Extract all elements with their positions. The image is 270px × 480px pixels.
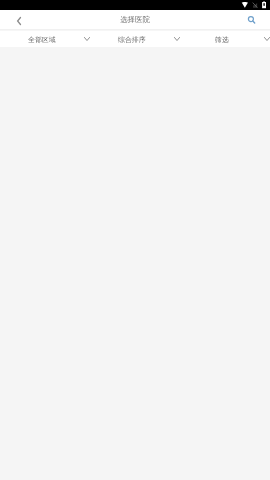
button[interactable]: 综合排序 (90, 31, 180, 47)
button[interactable]: 筛选 (180, 31, 270, 47)
staticText: 综合排序 (118, 35, 146, 44)
staticText: 选择医院 (120, 15, 150, 24)
staticText: 筛选 (215, 35, 229, 44)
button[interactable]: Search (244, 10, 258, 29)
button[interactable]: Back (17, 10, 29, 29)
staticText: 全部区域 (28, 35, 56, 44)
button[interactable]: 全部区域 (0, 31, 90, 47)
